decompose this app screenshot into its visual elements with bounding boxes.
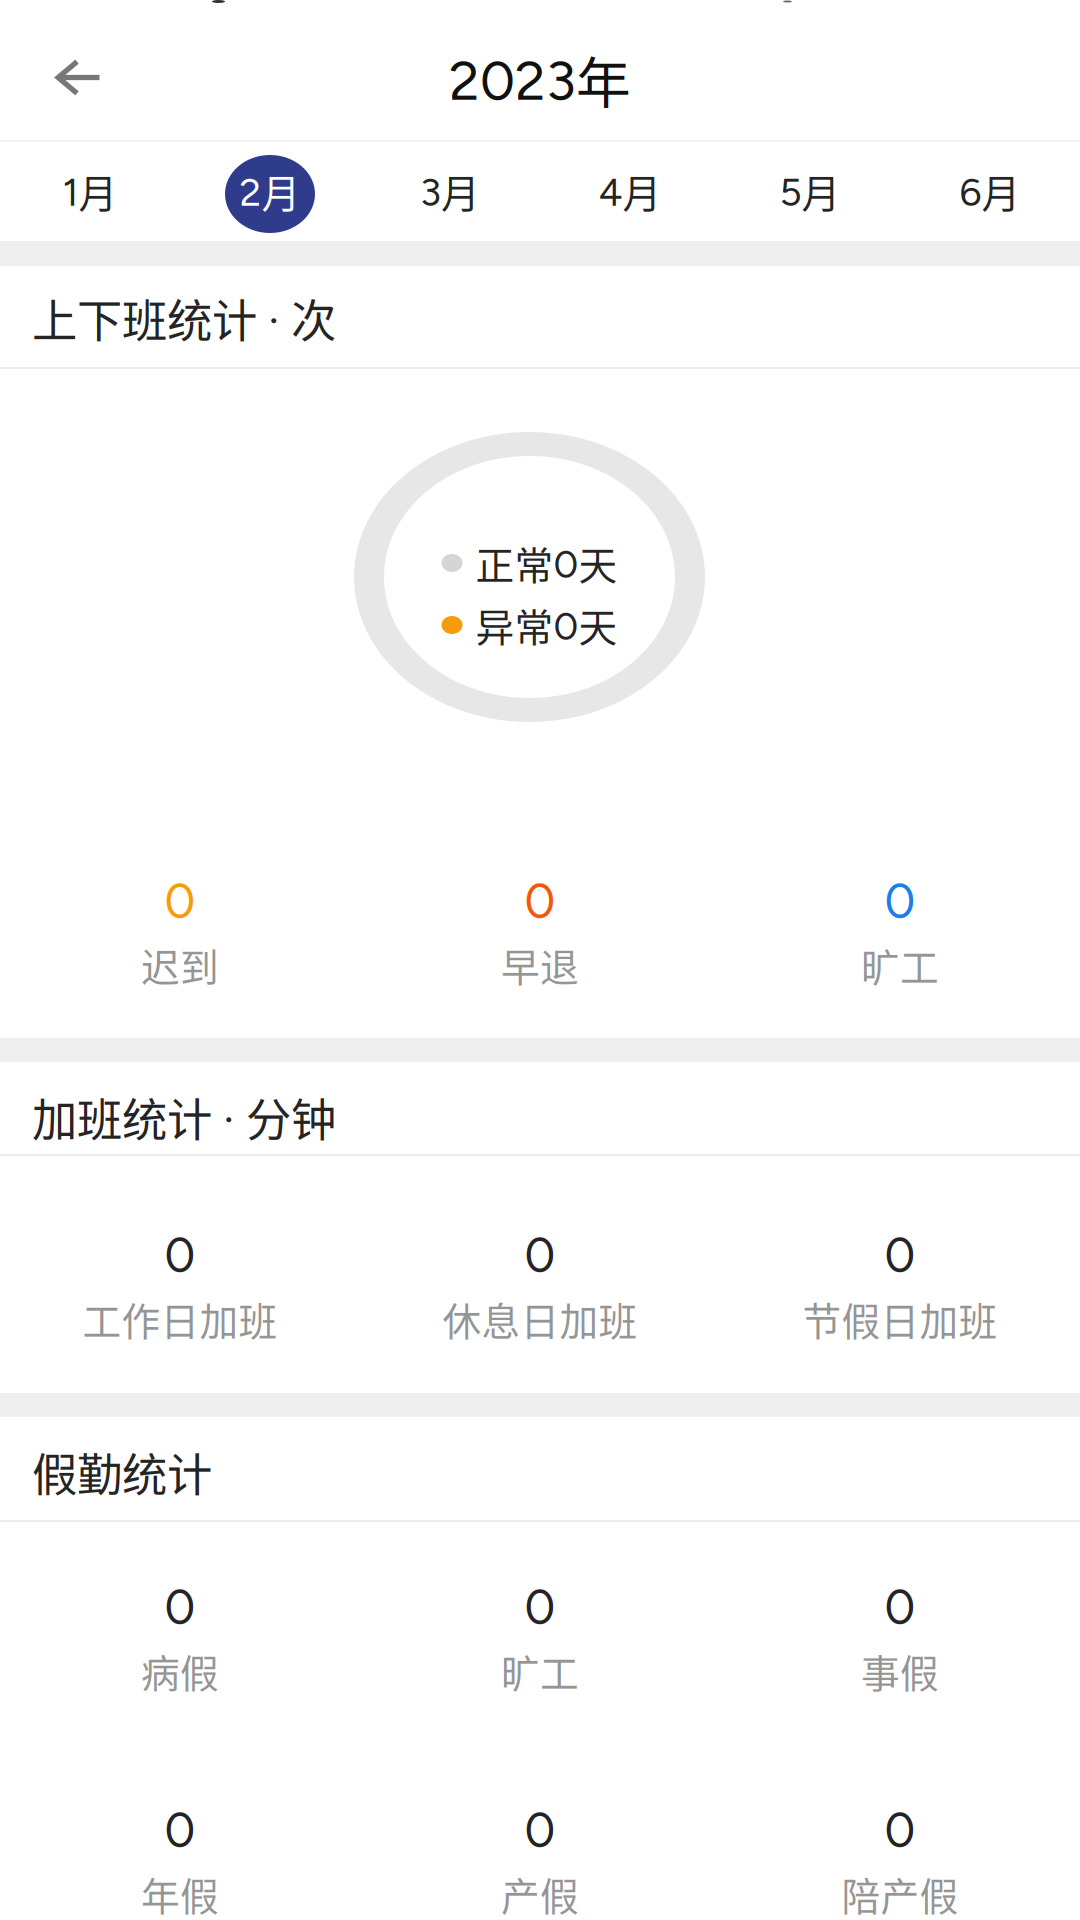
- staticText: 病假: [141, 1643, 219, 1699]
- button[interactable]: Back: [0, 0, 155, 140]
- staticText: 正常0天: [475, 535, 617, 591]
- staticText: 旷工: [861, 937, 939, 993]
- button[interactable]: 3月: [360, 142, 540, 241]
- staticText: 年假: [141, 1866, 219, 1920]
- staticText: 迟到: [141, 937, 219, 993]
- button[interactable]: 1月: [0, 142, 180, 241]
- staticText: 0: [524, 1226, 555, 1284]
- staticText: 产假: [501, 1866, 579, 1920]
- staticText: 休息日加班: [442, 1291, 637, 1347]
- staticText: 3月: [420, 163, 480, 219]
- staticText: 0: [164, 872, 195, 930]
- staticText: 节假日加班: [802, 1291, 997, 1347]
- staticText: 早退: [501, 937, 579, 993]
- staticText: 1月: [62, 163, 117, 219]
- staticText: 陪产假: [841, 1866, 958, 1920]
- staticText: 旷工: [501, 1643, 579, 1699]
- staticText: 2023年: [449, 39, 631, 119]
- button[interactable]: 4月: [540, 142, 720, 241]
- staticText: 6月: [959, 163, 1020, 219]
- staticText: 0: [524, 1801, 555, 1859]
- staticText: 0: [884, 1578, 915, 1636]
- staticText: 0: [524, 1578, 555, 1636]
- staticText: 0: [884, 872, 915, 930]
- staticText: 0: [884, 1801, 915, 1859]
- staticText: 0: [164, 1801, 195, 1859]
- staticText: 5月: [779, 163, 840, 219]
- staticText: 2月: [239, 163, 300, 219]
- staticText: 假勤统计: [32, 1439, 212, 1505]
- staticText: 0: [164, 1578, 195, 1636]
- staticText: 上下班统计 · 次: [32, 285, 336, 351]
- staticText: 工作日加班: [82, 1291, 277, 1347]
- staticText: 加班统计 · 分钟: [32, 1084, 336, 1150]
- button[interactable]: 2月: [180, 142, 360, 241]
- staticText: 0: [884, 1226, 915, 1284]
- staticText: 异常0天: [475, 597, 617, 653]
- staticText: 4月: [598, 163, 661, 219]
- staticText: 事假: [861, 1643, 939, 1699]
- staticText: 0: [164, 1226, 195, 1284]
- button[interactable]: 6月: [900, 142, 1080, 241]
- staticText: 0: [524, 872, 555, 930]
- button[interactable]: 5月: [720, 142, 900, 241]
